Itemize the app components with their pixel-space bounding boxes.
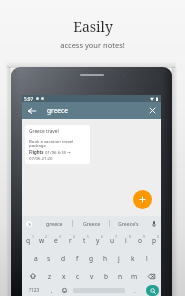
staticText: e — [54, 236, 58, 245]
staticText: d — [61, 254, 66, 263]
button[interactable]: greece — [35, 216, 73, 231]
button[interactable]: j — [112, 249, 126, 267]
staticText: Easily — [73, 17, 113, 36]
staticText: g — [89, 254, 94, 263]
button[interactable]: Clear search — [143, 102, 161, 119]
staticText: k — [131, 254, 135, 263]
button[interactable]: z — [43, 267, 57, 285]
staticText: greece — [47, 106, 68, 115]
staticText: l — [146, 254, 148, 263]
button[interactable]: n — [113, 267, 127, 285]
staticText: q — [26, 236, 31, 245]
button[interactable]: t — [77, 231, 91, 249]
staticText: Greece travel — [29, 128, 59, 135]
button[interactable]: Voice input — [146, 216, 161, 231]
button[interactable]: Back — [22, 102, 41, 119]
button[interactable]: u — [105, 231, 119, 249]
staticText: 3 — [59, 235, 61, 239]
button[interactable]: Greece — [73, 216, 110, 231]
staticText: 5:07 — [24, 96, 34, 102]
staticText: w — [39, 236, 45, 245]
staticText: 6 — [101, 235, 103, 239]
button[interactable]: m — [127, 267, 141, 285]
button[interactable]: f — [70, 249, 84, 267]
staticText: greece — [46, 220, 63, 227]
button[interactable]: d — [56, 249, 70, 267]
staticText: 2 — [45, 235, 47, 239]
button[interactable]: Backspace — [141, 267, 161, 285]
staticText: p — [152, 236, 157, 245]
staticText: x — [62, 272, 66, 281]
staticText: Greece — [83, 220, 101, 227]
staticText: 01/06 6:35 → — [44, 149, 71, 155]
button[interactable]: Shift — [22, 267, 43, 285]
staticText: . — [134, 287, 136, 295]
staticText: b — [104, 272, 109, 281]
staticText: 4 — [73, 235, 75, 239]
button[interactable]: y — [91, 231, 105, 249]
button[interactable]: i — [119, 231, 133, 249]
staticText: f — [76, 254, 79, 263]
staticText: z — [48, 272, 52, 281]
staticText: i — [125, 236, 127, 245]
button[interactable]: c — [71, 267, 85, 285]
staticText: v — [90, 272, 94, 281]
staticText: 1 — [32, 235, 34, 239]
button[interactable]: Search — [143, 285, 161, 296]
button[interactable]: o — [133, 231, 147, 249]
button[interactable]: p — [147, 231, 161, 249]
staticText: c — [76, 272, 80, 281]
staticText: 9 — [143, 235, 145, 239]
button[interactable]: g — [84, 249, 98, 267]
button[interactable]: s — [42, 249, 56, 267]
button[interactable]: x — [57, 267, 71, 285]
staticText: Greece's — [118, 220, 139, 227]
staticText: u — [110, 236, 115, 245]
button[interactable]: h — [98, 249, 112, 267]
staticText: Flights — [29, 149, 44, 155]
staticText: r — [69, 236, 72, 245]
button[interactable]: l — [140, 249, 154, 267]
staticText: 5 — [87, 235, 89, 239]
staticText: Book a vacation travel package — [29, 138, 74, 149]
button[interactable]: k — [126, 249, 140, 267]
staticText: 07/06 21:20 — [29, 155, 53, 161]
staticText: h — [103, 254, 108, 263]
staticText: 7 — [115, 235, 117, 239]
button[interactable]: , — [47, 285, 57, 296]
staticText: j — [118, 254, 120, 263]
staticText: n — [118, 272, 123, 281]
button[interactable]: q — [22, 231, 35, 249]
button[interactable]: e — [49, 231, 63, 249]
button[interactable]: v — [85, 267, 99, 285]
button[interactable]: Greece's — [110, 216, 146, 231]
staticText: s — [47, 254, 51, 263]
staticText: o — [138, 236, 142, 245]
button[interactable]: Add note — [133, 190, 152, 209]
button[interactable]: w — [35, 231, 49, 249]
button[interactable]: More suggestions — [22, 216, 35, 231]
staticText: a — [34, 254, 38, 263]
staticText: access your notes! — [60, 40, 125, 50]
staticText: m — [131, 272, 138, 281]
button[interactable]: ?123 — [22, 285, 47, 296]
staticText: 0 — [157, 235, 159, 239]
button[interactable]: Emoji — [57, 285, 72, 296]
button[interactable]: r — [63, 231, 77, 249]
staticText: t — [83, 236, 86, 245]
button[interactable]: Greece travel — [25, 125, 90, 164]
button[interactable]: b — [99, 267, 113, 285]
staticText: , — [51, 287, 53, 295]
button[interactable]: a — [29, 249, 42, 267]
staticText: 8 — [129, 235, 131, 239]
button[interactable]: . — [126, 285, 143, 296]
staticText: ?123 — [29, 287, 40, 294]
staticText: y — [96, 236, 100, 245]
